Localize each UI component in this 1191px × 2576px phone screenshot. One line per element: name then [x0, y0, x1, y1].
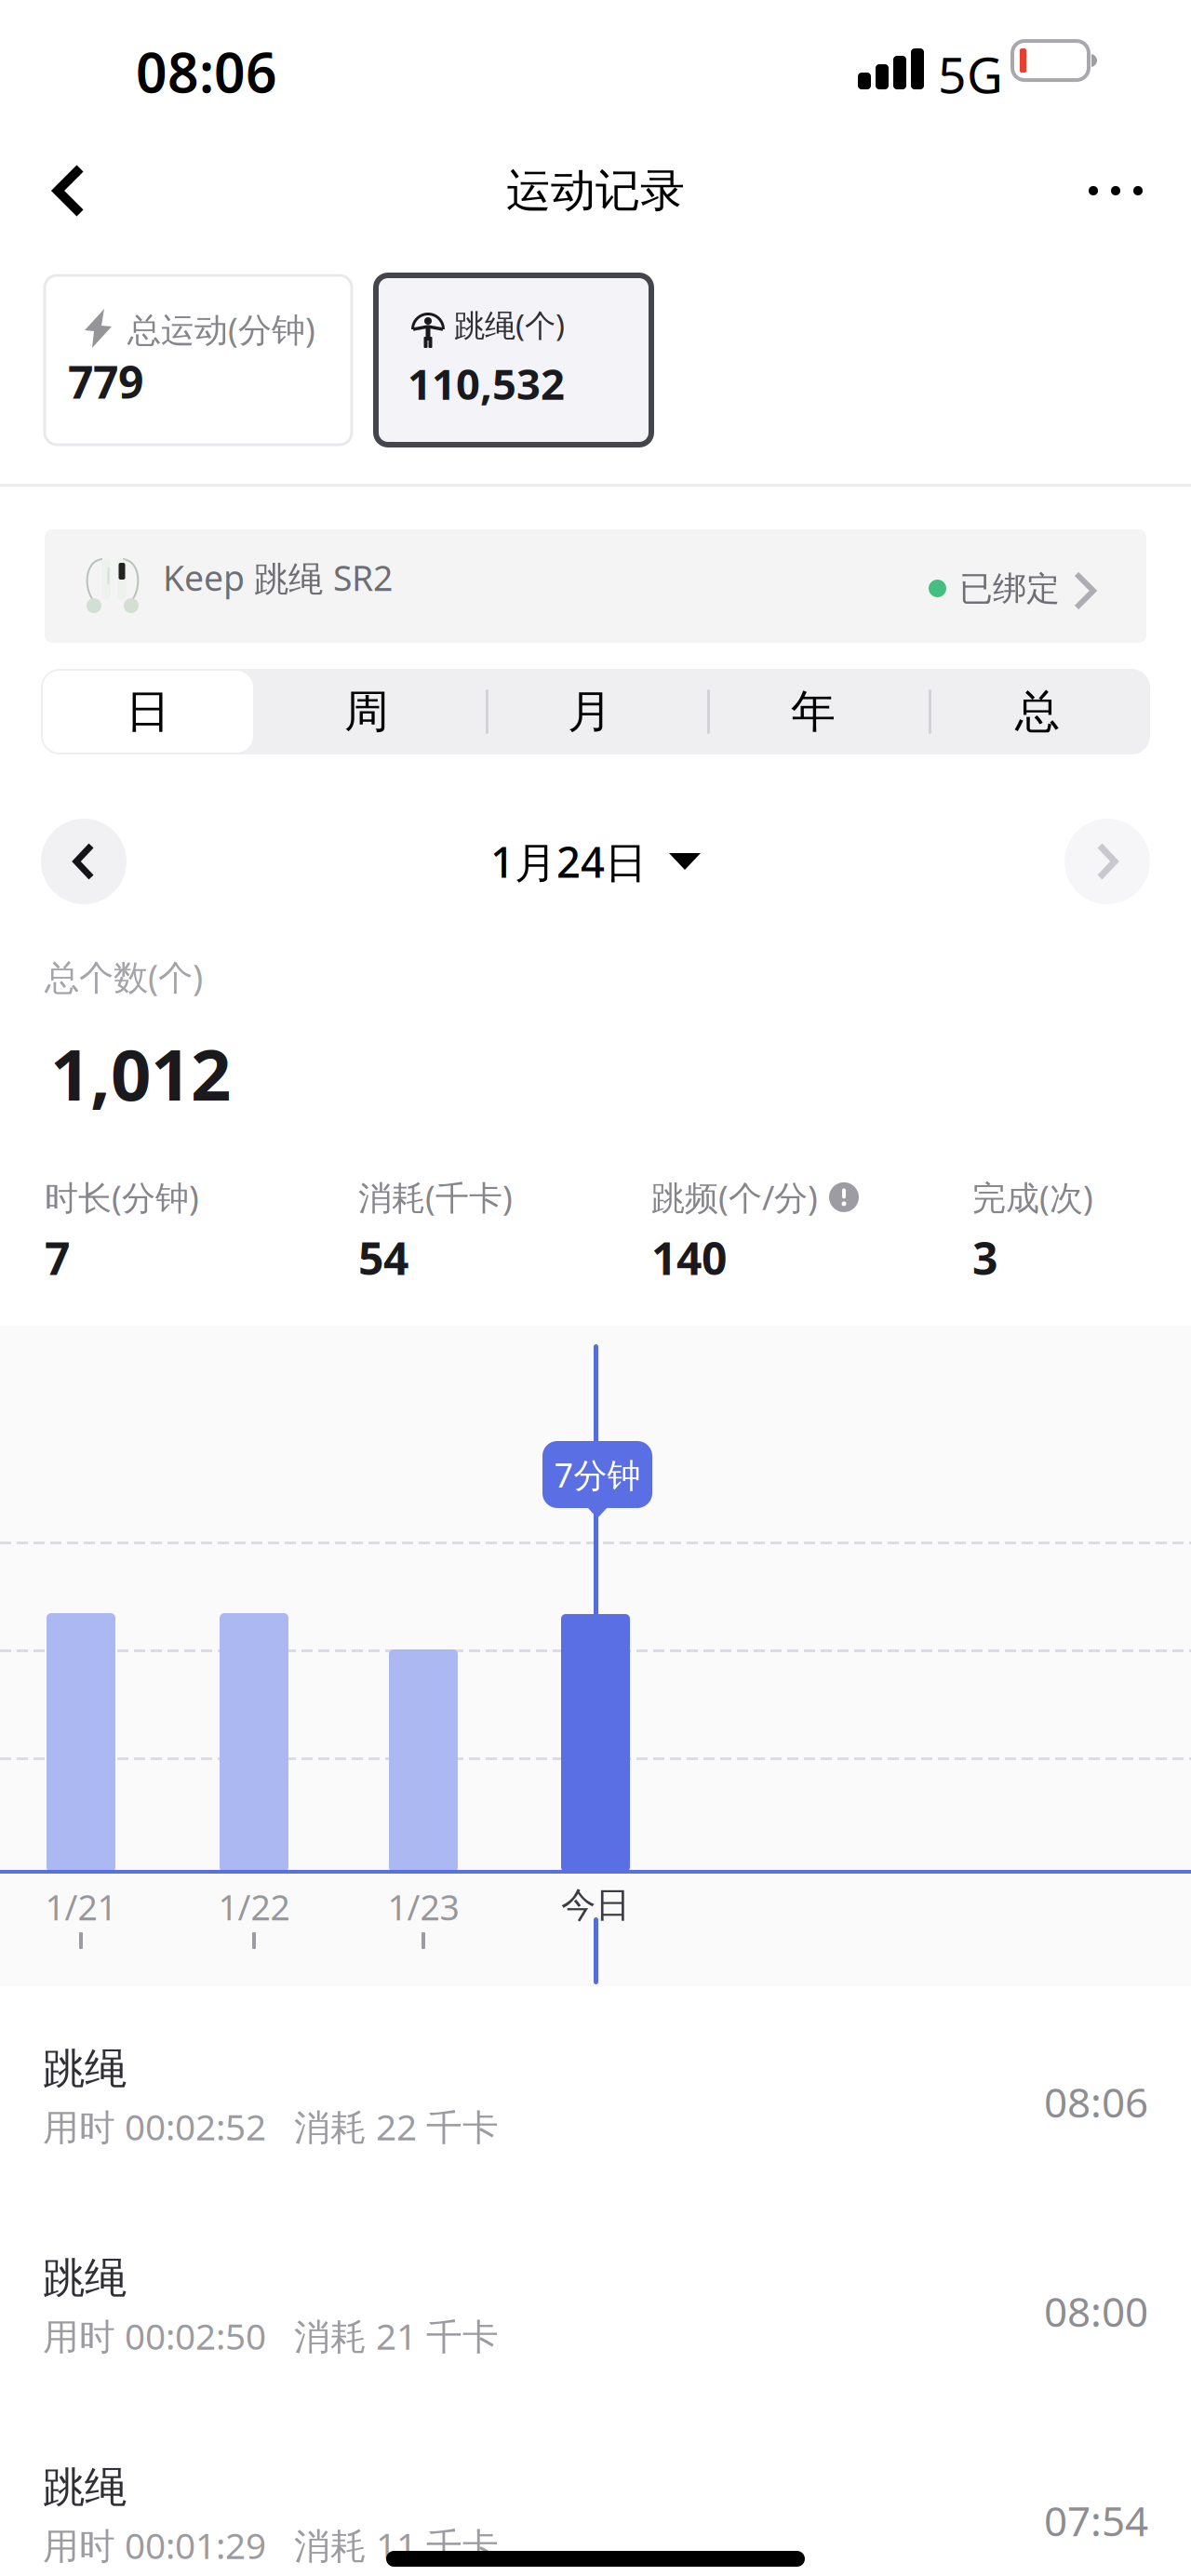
button[interactable]: Keep 跳绳 SR2	[45, 529, 1146, 643]
staticText: 用时 00:02:52	[43, 2102, 266, 2150]
button[interactable]: 总	[925, 669, 1150, 754]
staticText: 时长(分钟)	[45, 1175, 199, 1219]
button[interactable]: 年	[702, 669, 925, 754]
staticText: 1,012	[50, 1026, 231, 1120]
staticText: 日	[126, 684, 170, 739]
staticText: 779	[68, 352, 143, 411]
staticText: 54	[358, 1228, 408, 1287]
staticText: Keep 跳绳 SR2	[163, 554, 393, 601]
button[interactable]: 后一天	[1064, 819, 1150, 904]
staticText: 1/21	[45, 1884, 117, 1930]
staticText: 08:06	[1044, 2075, 1148, 2129]
staticText: 1/23	[388, 1884, 459, 1930]
staticText: 08:00	[1044, 2284, 1148, 2338]
staticText: 110,532	[408, 355, 565, 411]
staticText: 月	[568, 684, 612, 739]
button[interactable]: 1月24日	[41, 819, 1150, 904]
button[interactable]: 月	[478, 669, 702, 754]
staticText: 消耗(千卡)	[358, 1175, 513, 1219]
staticText: 1月24日	[490, 833, 647, 889]
staticText: 总运动(分钟)	[127, 307, 315, 351]
staticText: 跳绳	[43, 2462, 127, 2513]
button[interactable]: 更多	[1060, 135, 1171, 247]
staticText: 7分钟	[554, 1452, 641, 1497]
staticText: 总	[1015, 684, 1060, 739]
button[interactable]: 日	[41, 669, 255, 754]
staticText: 消耗 21 千卡	[294, 2312, 499, 2360]
staticText: 用时 00:01:29	[43, 2521, 266, 2569]
staticText: 今日	[561, 1884, 630, 1927]
staticText: 跳绳	[43, 2043, 127, 2095]
staticText: 运动记录	[506, 163, 685, 218]
staticText: 总个数(个)	[45, 954, 203, 1000]
staticText: 用时 00:02:50	[43, 2312, 266, 2360]
button[interactable]: 总运动(分钟)	[45, 275, 352, 445]
staticText: 07:54	[1044, 2493, 1148, 2548]
button[interactable]: 跳绳(个)	[376, 275, 651, 445]
button[interactable]: 前一天	[41, 819, 127, 904]
button[interactable]: 跳绳	[0, 2037, 1191, 2247]
staticText: 周	[344, 684, 389, 739]
button[interactable]: 跳绳	[0, 2247, 1191, 2456]
staticText: 完成(次)	[972, 1175, 1093, 1219]
staticText: 跳绳(个)	[454, 304, 565, 345]
staticText: 7	[45, 1228, 70, 1287]
button[interactable]: 返回	[13, 135, 125, 247]
staticText: 5G	[938, 41, 1003, 107]
staticText: 08:06	[136, 35, 277, 108]
staticText: 年	[791, 684, 836, 739]
staticText: 消耗 11 千卡	[294, 2521, 499, 2569]
staticText: 跳频(个/分)	[651, 1175, 818, 1219]
staticText: 140	[651, 1228, 727, 1287]
button[interactable]: 跳绳	[0, 2456, 1191, 2576]
button[interactable]: 周	[255, 669, 478, 754]
staticText: 跳绳	[43, 2252, 127, 2304]
staticText: 1/22	[218, 1884, 290, 1930]
staticText: 消耗 22 千卡	[294, 2102, 499, 2150]
staticText: 已绑定	[959, 568, 1060, 610]
staticText: 3	[972, 1228, 997, 1287]
